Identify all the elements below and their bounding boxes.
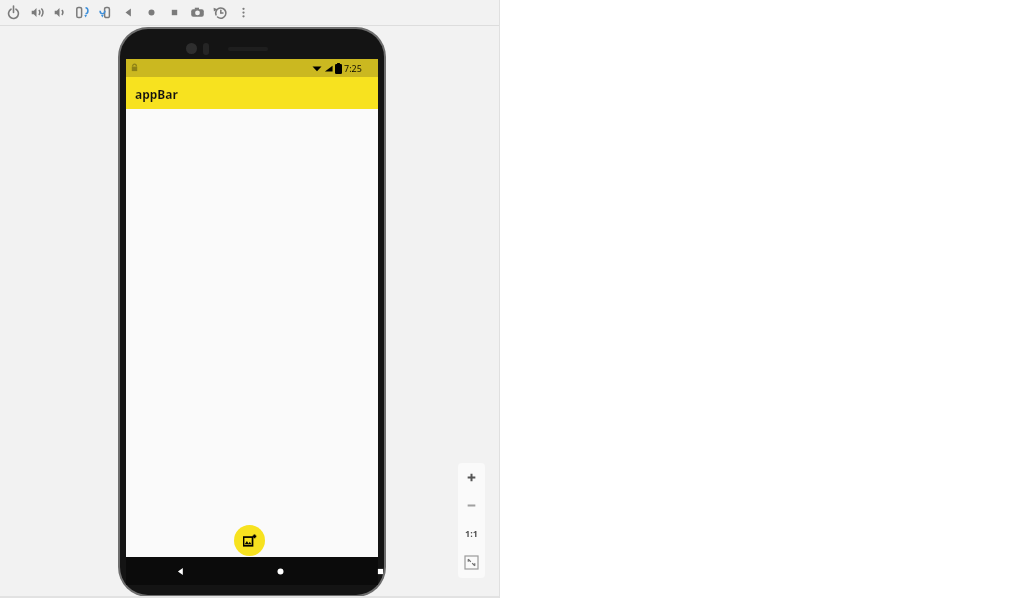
button[interactable]: Fit to screen <box>458 549 485 575</box>
button[interactable]: appBar <box>126 77 378 109</box>
button[interactable]: Rotate right <box>94 0 117 25</box>
button[interactable]: Zoom out <box>458 491 485 519</box>
button[interactable]: Overview <box>163 0 186 25</box>
staticText: 7:25 <box>344 62 362 74</box>
button[interactable]: Home <box>266 557 294 585</box>
button[interactable]: Volume down <box>48 0 71 25</box>
staticText: 1:1 <box>465 527 478 539</box>
button[interactable]: Screenshot <box>186 0 209 25</box>
button[interactable]: Record screen <box>209 0 232 25</box>
button[interactable]: 1:1 <box>458 519 485 547</box>
button[interactable]: Back <box>117 0 140 25</box>
button[interactable]: More <box>232 0 255 25</box>
button[interactable]: Home <box>140 0 163 25</box>
button[interactable]: Overview <box>366 557 394 585</box>
button[interactable]: Volume up <box>25 0 48 25</box>
staticText: appBar <box>135 86 178 102</box>
button[interactable]: Zoom in <box>458 463 485 491</box>
button[interactable]: Back <box>176 557 428 585</box>
button[interactable]: Back <box>166 557 194 585</box>
button[interactable]: Rotate left <box>71 0 94 25</box>
button[interactable]: Add photo <box>234 525 265 556</box>
button[interactable]: Power <box>2 0 25 25</box>
